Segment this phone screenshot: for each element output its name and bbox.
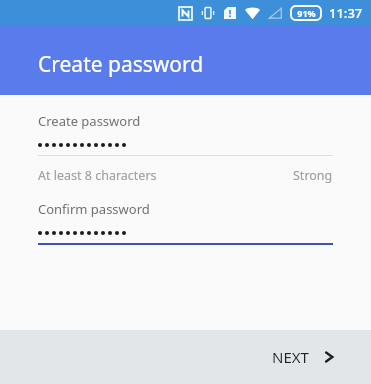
other: SIM card alert (224, 7, 236, 19)
other: NFC enabled (179, 7, 192, 20)
other: Wi-Fi signal (245, 6, 260, 21)
other: Vibrate mode (201, 6, 215, 20)
other: Battery 91 percent (291, 6, 321, 20)
staticText: NEXT (272, 347, 309, 367)
staticText: Confirm password (38, 200, 150, 218)
button[interactable]: NEXT (246, 335, 371, 379)
staticText: Create password (38, 50, 204, 79)
staticText: 91% (297, 7, 316, 19)
staticText: Create password (38, 112, 141, 130)
staticText: Strong (293, 167, 333, 184)
staticText: At least 8 characters (38, 167, 157, 184)
staticText: 11:37 (329, 4, 363, 22)
other: Mobile signal (268, 6, 282, 20)
